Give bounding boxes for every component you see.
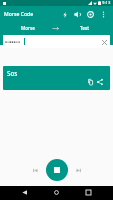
button[interactable]: Sos — [3, 66, 110, 90]
button[interactable]: More options — [97, 8, 110, 21]
staticText: Text — [80, 25, 90, 31]
button[interactable]: Share — [95, 77, 104, 86]
button[interactable]: Morse — [0, 22, 56, 34]
button[interactable]: Vibrate — [84, 8, 97, 21]
button[interactable]: Stop — [46, 159, 68, 181]
staticText: 9:13 — [102, 0, 111, 6]
button[interactable]: Previous — [29, 164, 41, 176]
button[interactable]: Recents — [72, 186, 104, 198]
button[interactable]: Text — [56, 22, 113, 34]
button[interactable]: Clear — [99, 37, 109, 47]
button[interactable]: Flashlight — [58, 8, 71, 21]
button[interactable]: Copy — [86, 77, 95, 86]
button[interactable]: Swap — [50, 24, 61, 33]
button[interactable]: Back — [9, 186, 40, 198]
button[interactable]: Sound — [71, 8, 84, 21]
button[interactable]: Home — [40, 186, 72, 198]
staticText: Sos — [7, 69, 18, 78]
staticText: Morse Code — [4, 11, 34, 18]
staticText: Morse — [21, 25, 35, 31]
button[interactable]: Next — [73, 164, 85, 176]
